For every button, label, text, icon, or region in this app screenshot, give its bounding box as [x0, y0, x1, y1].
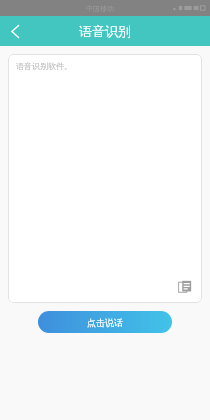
- button[interactable]: Back: [0, 16, 30, 46]
- staticText: 点击说话: [87, 317, 123, 328]
- staticText: 语音识别: [79, 23, 131, 39]
- button[interactable]: 点击说话: [38, 311, 172, 333]
- staticText: 语音识别软件。: [16, 61, 72, 71]
- button[interactable]: 语音识别软件。: [8, 54, 202, 303]
- staticText: 中国移动: [86, 4, 114, 13]
- button[interactable]: Copy: [176, 278, 194, 296]
